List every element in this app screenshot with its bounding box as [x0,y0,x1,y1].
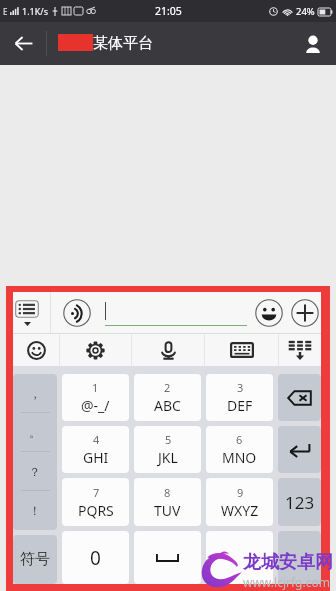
button[interactable]: Keyboard layout [205,334,278,366]
button[interactable]: 8 [134,478,201,526]
button[interactable]: Emoticons [13,334,59,366]
button[interactable]: Hide keyboard [279,334,321,366]
button[interactable]: 。 [13,413,57,452]
staticText: 21:05 [155,4,182,18]
button[interactable]: Emoji [249,292,289,333]
staticText: 6 [236,432,243,447]
button[interactable]: 3 [206,374,273,421]
staticText: ABC [154,396,181,415]
button[interactable]: 9 [206,478,273,526]
button[interactable]: Add [289,292,321,333]
staticText: ？ [29,464,41,479]
staticText: 7 [93,485,100,500]
button[interactable]: Candidates [13,292,50,333]
button[interactable]: 7 [62,478,129,526]
staticText: 123 [285,491,315,514]
button[interactable]: 2 [134,374,201,421]
staticText: 5 [165,432,172,447]
staticText: 2 [164,380,171,395]
staticText: 。 [29,425,41,440]
staticText: 8 [164,485,171,500]
button[interactable]: Comma key [206,531,273,584]
staticText: 某体平台 [93,34,153,53]
staticText: 符号 [20,550,50,569]
staticText: 1 [92,380,99,395]
button[interactable]: 4 [62,426,129,473]
button[interactable]: Back [0,22,46,65]
button[interactable]: 0 [62,531,129,584]
button[interactable]: 符号 [13,535,57,584]
staticText: WXYZ [221,501,259,520]
button[interactable]: ， [13,374,57,413]
staticText: JKL [158,448,178,467]
button[interactable]: Space [134,531,201,584]
staticText: @-_/ [81,396,110,415]
button[interactable]: ？ [13,452,57,491]
staticText: TUV [154,501,181,520]
staticText: 3 [237,380,244,395]
staticText: 4 [93,432,100,447]
staticText: 1.1K/s [22,5,48,17]
button[interactable]: Send [278,531,321,584]
staticText: GHI [83,448,109,467]
staticText: MNO [222,448,257,467]
staticText: ！ [29,503,41,518]
staticText: www.lcjrfg.com [243,574,330,590]
button[interactable]: Account [290,22,336,65]
button[interactable]: 5 [134,426,201,473]
staticText: DEF [227,396,253,415]
button[interactable]: 1 [62,374,129,421]
button[interactable]: Voice [132,334,204,366]
button[interactable]: Backspace [278,374,321,421]
button[interactable]: 123 [278,478,321,526]
staticText: PQRS [78,501,114,520]
button[interactable]: Enter [278,426,321,473]
staticText: 24% [296,5,315,18]
staticText: E [3,6,8,17]
staticText: 9 [237,485,244,500]
button[interactable]: 6 [206,426,273,473]
button[interactable]: Voice input [51,292,102,333]
staticText: 0 [90,545,101,571]
staticText: 龙城安卓网 [243,551,333,574]
button[interactable]: ！ [13,491,57,530]
staticText: ， [29,386,41,401]
button[interactable]: Settings [60,334,131,366]
